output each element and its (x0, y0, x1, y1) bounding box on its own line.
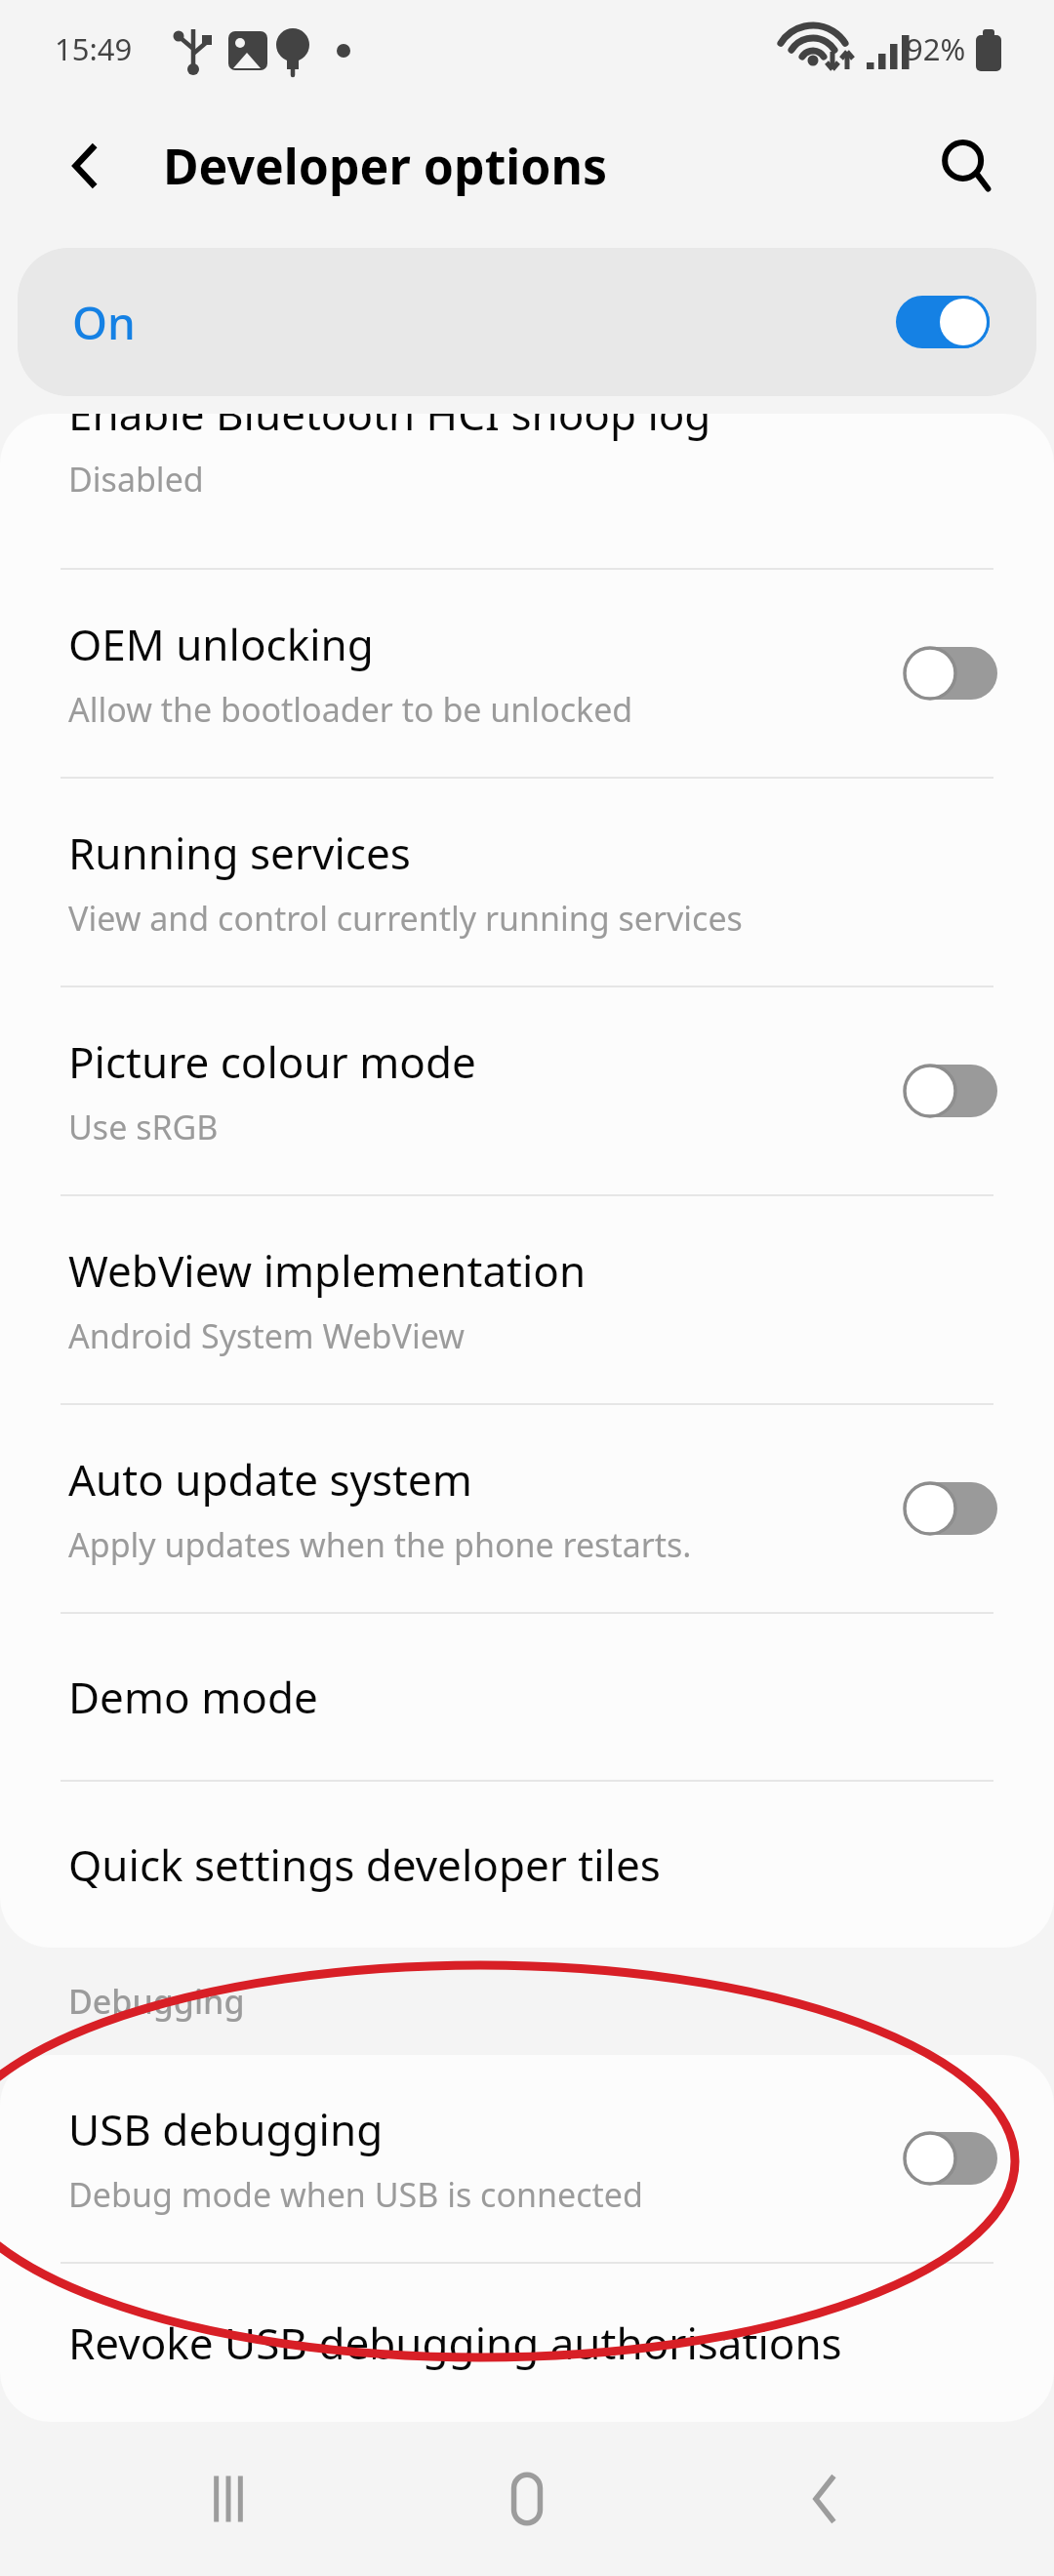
staticText: Developer options (163, 133, 608, 199)
staticText: USB debugging (68, 2100, 384, 2158)
staticText: Auto update system (68, 1450, 472, 1509)
button[interactable]: Revoke USB debugging authorisations (0, 2264, 1054, 2422)
staticText: Debug mode when USB is connected (68, 2172, 643, 2217)
staticText: View and control currently running servi… (68, 896, 743, 941)
staticText: Disabled (68, 457, 204, 502)
staticText: 92% (906, 28, 966, 69)
staticText: Demo mode (68, 1668, 318, 1726)
button[interactable]: Search (921, 121, 1011, 211)
button[interactable]: Quick settings developer tiles (0, 1782, 1054, 1948)
button[interactable]: Enable Bluetooth HCI snoop log (0, 414, 1054, 568)
staticText: Android System WebView (68, 1313, 465, 1358)
button[interactable]: Home (472, 2444, 582, 2554)
button[interactable]: On (18, 248, 1036, 396)
button[interactable]: Demo mode (0, 1614, 1054, 1780)
staticText: Allow the bootloader to be unlocked (68, 687, 633, 732)
button[interactable]: Navigate up (41, 121, 131, 211)
button[interactable]: OEM unlocking (0, 570, 1054, 777)
staticText: Apply updates when the phone restarts. (68, 1522, 692, 1567)
staticText: OEM unlocking (68, 615, 374, 673)
staticText: Revoke USB debugging authorisations (68, 2314, 842, 2372)
staticText: 15:49 (55, 28, 133, 69)
button[interactable]: USB debugging (0, 2055, 1054, 2262)
staticText: Quick settings developer tiles (68, 1835, 661, 1894)
staticText: Picture colour mode (68, 1032, 476, 1091)
button[interactable]: WebView implementation (0, 1196, 1054, 1403)
button[interactable]: Back (771, 2444, 880, 2554)
button[interactable]: Recent apps (174, 2444, 283, 2554)
staticText: Use sRGB (68, 1105, 219, 1149)
staticText: Enable Bluetooth HCI snoop log (68, 414, 711, 443)
staticText: WebView implementation (68, 1241, 587, 1300)
button[interactable]: Picture colour mode (0, 987, 1054, 1194)
button[interactable]: Running services (0, 779, 1054, 986)
staticText: Running services (68, 824, 411, 882)
staticText: On (72, 292, 136, 353)
button[interactable]: Auto update system (0, 1405, 1054, 1612)
staticText: Debugging (68, 1979, 245, 2024)
